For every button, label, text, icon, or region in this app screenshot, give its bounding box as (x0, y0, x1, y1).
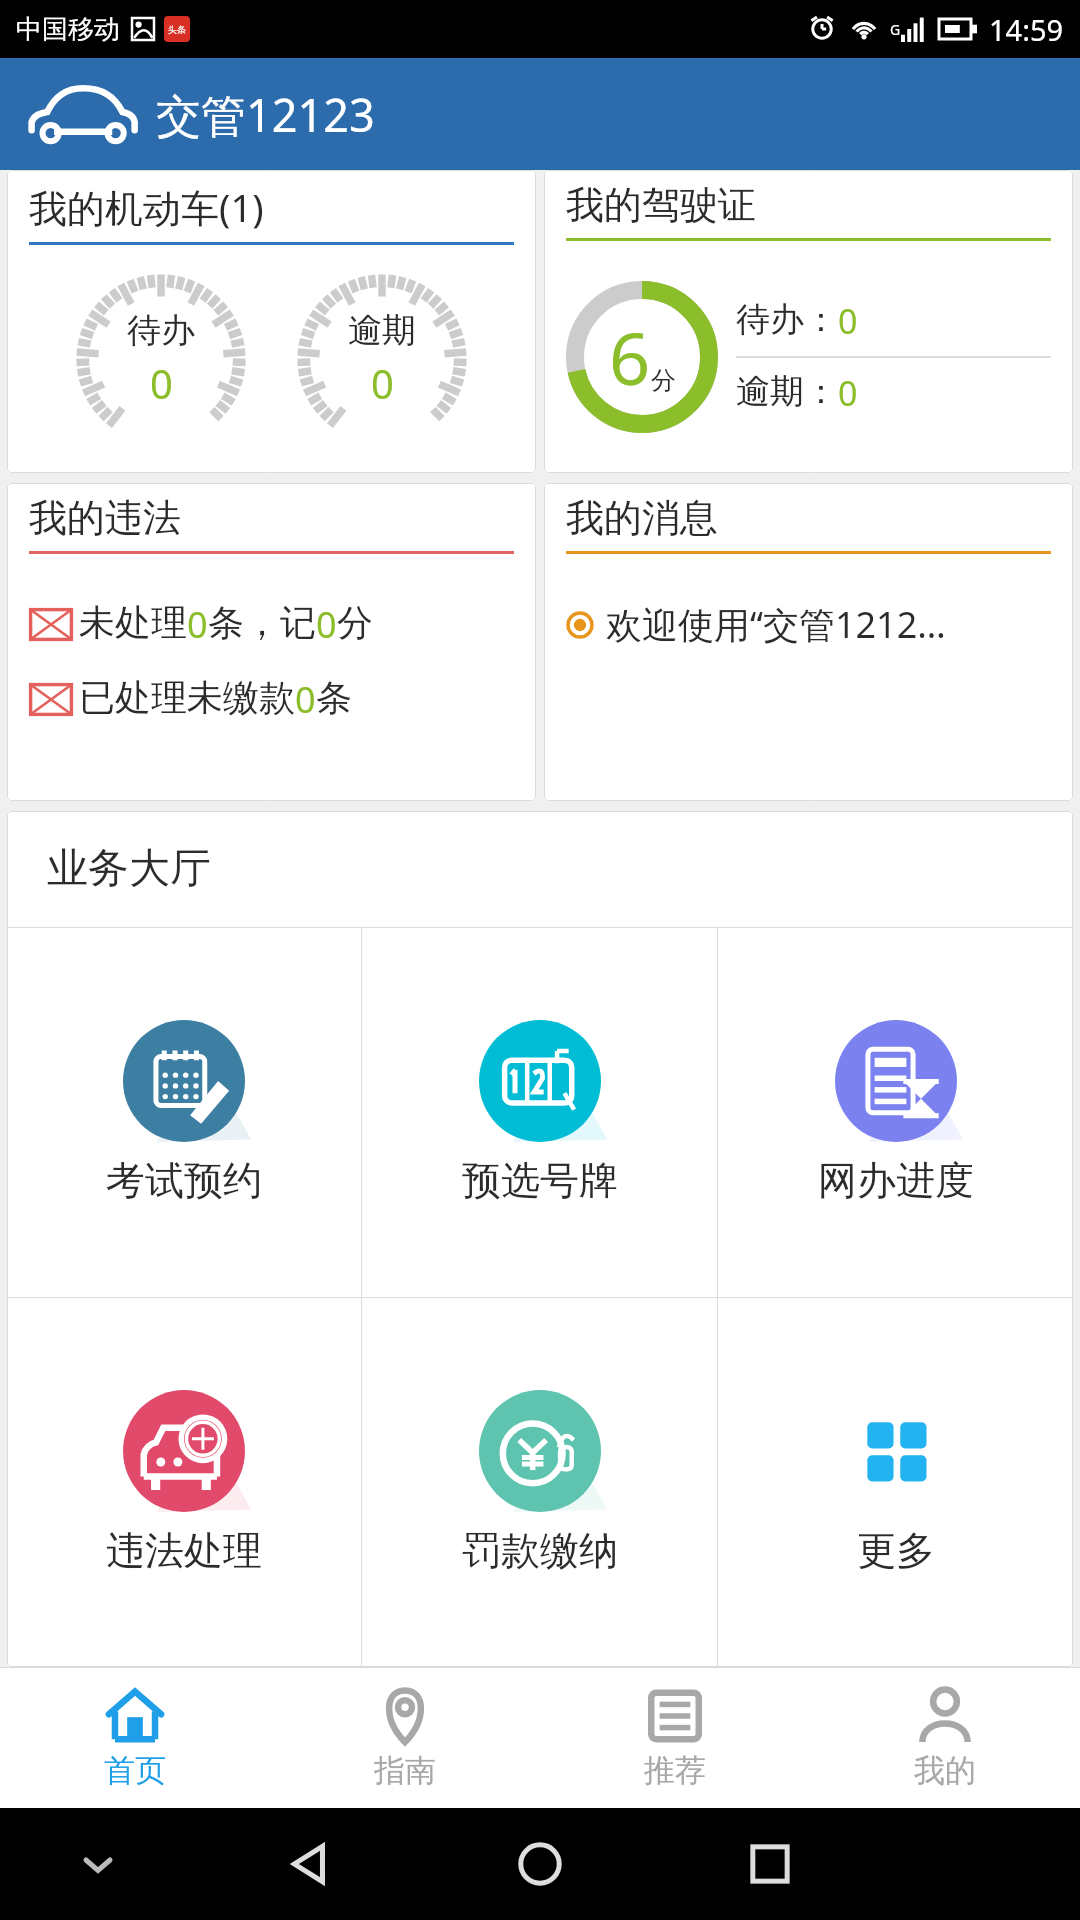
staticText: 0 (371, 356, 394, 410)
button[interactable]: 罚款缴纳 (362, 1298, 717, 1667)
staticText: 欢迎使用“交管1212… (606, 600, 946, 649)
staticText: 逾期 (348, 309, 416, 352)
button[interactable]: 我的消息 (544, 483, 1073, 801)
button[interactable]: 我的 (810, 1668, 1080, 1808)
staticText: 头条 (168, 24, 186, 35)
staticText: 0 (316, 600, 337, 649)
staticText: 0 (187, 600, 208, 649)
staticText: 指南 (374, 1751, 436, 1790)
button[interactable]: 我的驾驶证 (544, 170, 1073, 473)
staticText: 考试预约 (106, 1156, 262, 1205)
button[interactable]: 指南 (270, 1668, 540, 1808)
button[interactable]: 首页 (0, 1668, 270, 1808)
button[interactable]: 预选号牌 (362, 928, 717, 1297)
staticText: 条，记 (208, 600, 316, 645)
staticText: 我的违法 (29, 494, 181, 542)
staticText: 推荐 (644, 1751, 706, 1790)
staticText: 0 (838, 298, 858, 344)
other: Hide keyboard (78, 1844, 118, 1884)
staticText: 我的 (914, 1751, 976, 1790)
staticText: 条 (316, 675, 352, 720)
staticText: 我的消息 (566, 494, 718, 542)
staticText: 预选号牌 (462, 1156, 618, 1205)
other: Home (514, 1838, 566, 1890)
button[interactable]: 推荐 (540, 1668, 810, 1808)
staticText: 6 (609, 308, 651, 406)
button[interactable]: 更多 (718, 1298, 1073, 1667)
other: Back (284, 1838, 336, 1890)
button[interactable]: 已处理未缴款 (29, 675, 514, 724)
staticText: 未处理 (79, 600, 187, 645)
staticText: 交管12123 (156, 84, 375, 145)
staticText: 0 (838, 370, 858, 416)
staticText: 罚款缴纳 (462, 1526, 618, 1575)
staticText: 0 (150, 356, 173, 410)
staticText: 逾期： (736, 370, 838, 413)
button[interactable]: 我的机动车(1) (7, 170, 536, 473)
staticText: 待办： (736, 298, 838, 341)
button[interactable]: 欢迎使用“交管1212… (566, 600, 1051, 649)
staticText: 分 (651, 365, 676, 396)
staticText: 已处理未缴款 (79, 675, 295, 720)
staticText: 14:59 (989, 10, 1064, 49)
staticText: 分 (337, 600, 373, 645)
staticText: 业务大厅 (47, 843, 211, 895)
staticText: 违法处理 (106, 1526, 262, 1575)
button[interactable]: 违法处理 (7, 1298, 361, 1667)
staticText: 待办 (127, 309, 195, 352)
staticText: 网办进度 (818, 1156, 974, 1205)
button[interactable]: 网办进度 (718, 928, 1073, 1297)
staticText: 我的驾驶证 (566, 181, 756, 229)
other: Recents (744, 1838, 796, 1890)
staticText: 我的机动车(1) (29, 181, 264, 233)
staticText: 中国移动 (16, 13, 120, 46)
staticText: 更多 (857, 1526, 935, 1575)
button[interactable]: 考试预约 (7, 928, 361, 1297)
staticText: 0 (295, 675, 316, 724)
button[interactable]: 我的违法 (7, 483, 536, 801)
staticText: G (890, 20, 901, 39)
staticText: 首页 (104, 1751, 166, 1790)
button[interactable]: 未处理 (29, 600, 514, 649)
